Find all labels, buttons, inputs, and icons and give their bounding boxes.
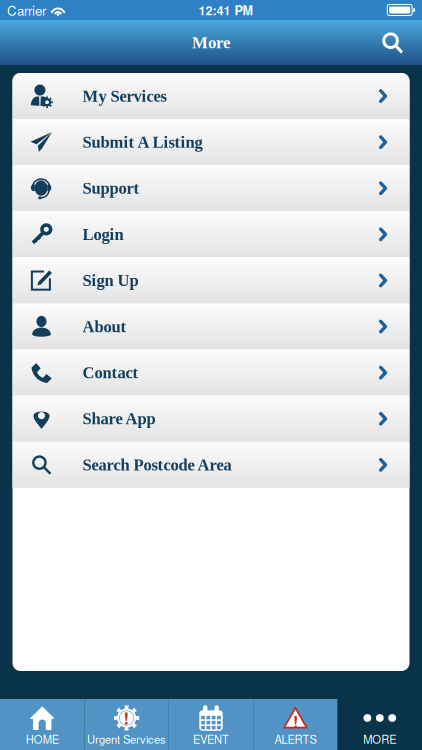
button[interactable]: Sign Up bbox=[12, 257, 409, 303]
button[interactable]: Submit A Listing bbox=[12, 119, 409, 165]
button[interactable]: ! bbox=[84, 699, 169, 750]
button[interactable]: Login bbox=[12, 211, 409, 257]
button[interactable]: Search Postcode Area bbox=[12, 442, 409, 488]
staticText: 12:41 PM bbox=[199, 1, 254, 19]
staticText: ALERTS bbox=[274, 731, 316, 747]
staticText: MORE bbox=[363, 731, 396, 747]
staticText: Submit A Listing bbox=[82, 133, 202, 151]
button[interactable]: HOME bbox=[0, 699, 84, 750]
button[interactable]: Support bbox=[12, 165, 409, 211]
staticText: Share App bbox=[82, 410, 155, 428]
button[interactable]: Search bbox=[370, 22, 414, 62]
staticText: My Services bbox=[82, 87, 166, 105]
button[interactable]: My Services bbox=[12, 73, 409, 119]
staticText: Login bbox=[82, 225, 123, 243]
button[interactable]: MORE bbox=[338, 699, 422, 750]
button[interactable]: About bbox=[12, 303, 409, 350]
staticText: Carrier bbox=[7, 0, 46, 20]
button[interactable]: EVENT bbox=[169, 699, 253, 750]
staticText: ! bbox=[293, 710, 298, 733]
staticText: EVENT bbox=[193, 731, 229, 747]
staticText: ! bbox=[124, 706, 130, 730]
staticText: Sign Up bbox=[82, 271, 138, 290]
button[interactable]: Contact bbox=[12, 350, 409, 396]
staticText: About bbox=[82, 317, 126, 336]
staticText: Urgent Services bbox=[87, 731, 166, 747]
staticText: More bbox=[192, 33, 230, 52]
staticText: HOME bbox=[26, 731, 59, 747]
staticText: Support bbox=[82, 179, 139, 197]
button[interactable]: Share App bbox=[12, 396, 409, 442]
staticText: Contact bbox=[82, 363, 138, 382]
button[interactable]: ! bbox=[253, 699, 338, 750]
staticText: Search Postcode Area bbox=[82, 456, 231, 474]
